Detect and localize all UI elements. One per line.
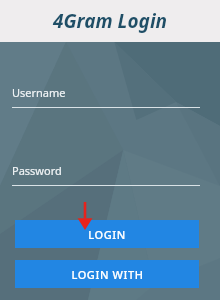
staticText: Password (12, 163, 62, 178)
staticText: LOGIN WITH (71, 267, 144, 282)
staticText: Username (12, 85, 66, 100)
button[interactable]: LOGIN WITH (15, 260, 199, 288)
staticText: 4Gram Login (53, 8, 168, 34)
button[interactable]: LOGIN (15, 220, 199, 248)
staticText: LOGIN (88, 227, 126, 242)
other: Arrow pointing to Login button (77, 202, 93, 230)
